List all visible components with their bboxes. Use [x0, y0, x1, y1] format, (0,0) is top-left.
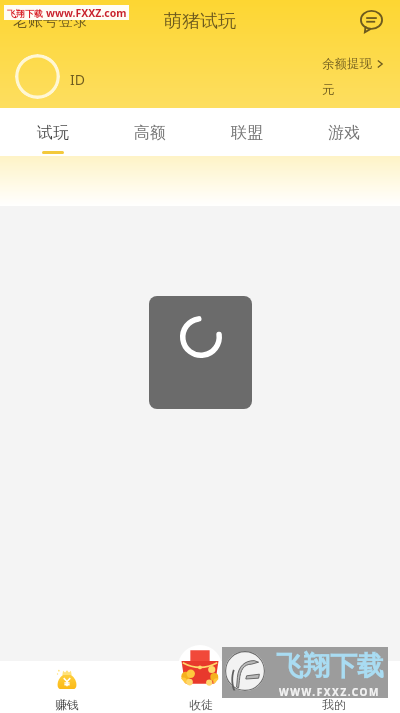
button[interactable]: 老账号登录 [13, 12, 88, 31]
staticText: 我的 [322, 697, 346, 712]
button[interactable]: 游戏 [295, 108, 392, 156]
button[interactable]: 联盟 [198, 108, 295, 156]
staticText: 飞翔下载 [276, 649, 384, 683]
staticText: 游戏 [328, 123, 360, 143]
staticText: 高额 [134, 123, 166, 143]
staticText: www.FXXZ.com [46, 6, 127, 20]
staticText: 赚钱 [55, 697, 79, 712]
button[interactable]: 试玩 [5, 108, 101, 156]
staticText: 试玩 [37, 123, 69, 143]
staticText: 收徒 [189, 697, 213, 712]
staticText: 联盟 [231, 123, 263, 143]
button[interactable]: Messages [356, 6, 386, 36]
button[interactable]: Avatar [15, 54, 60, 99]
button[interactable]: 赚钱 [0, 661, 134, 713]
button[interactable]: 收徒 [134, 661, 267, 713]
staticText: 萌猪试玩 [164, 10, 236, 33]
staticText: WWW.FXXZ.COM [279, 685, 381, 698]
staticText: ID [70, 70, 85, 89]
button[interactable]: 我的 [267, 661, 400, 713]
staticText: 元 [322, 82, 335, 98]
staticText: 飞翔下载 [7, 8, 43, 19]
button[interactable]: 高额 [101, 108, 198, 156]
staticText: 老账号登录 [13, 12, 88, 31]
button[interactable]: 收徒 [178, 645, 222, 689]
staticText: 余额提现 [322, 56, 372, 72]
button[interactable]: 余额提现 [322, 56, 385, 72]
